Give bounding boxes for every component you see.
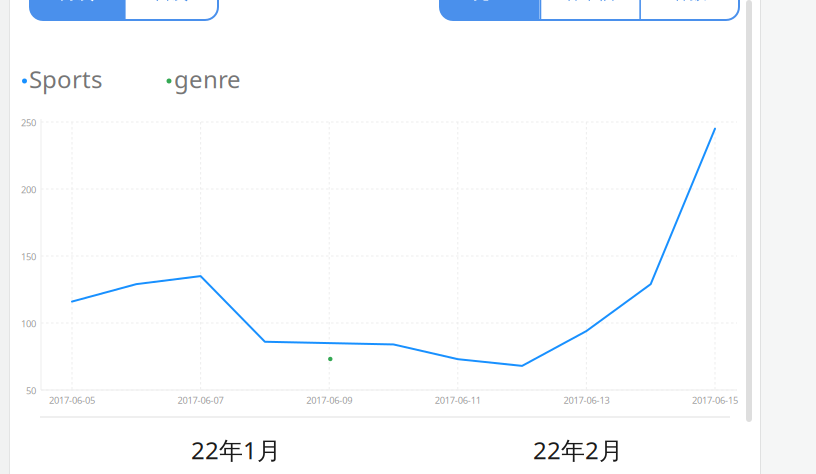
button[interactable]: 売上 [440, 0, 540, 20]
staticText: 客数 [672, 0, 706, 4]
staticText: 日次 [154, 0, 188, 4]
staticText: 2017-06-07 [178, 394, 224, 406]
staticText: 客単価 [564, 0, 615, 4]
staticText: 250 [21, 116, 36, 129]
staticText: 2017-06-13 [563, 394, 609, 406]
staticText: 2017-06-05 [49, 394, 95, 406]
staticText: 2017-06-11 [435, 394, 481, 406]
staticText: 22年2月 [533, 434, 623, 466]
button[interactable]: 客単価 [540, 0, 639, 20]
staticText: 22年1月 [191, 434, 281, 466]
staticText: 100 [21, 317, 36, 330]
staticText: 200 [21, 183, 36, 196]
staticText: 売上 [473, 0, 507, 4]
staticText: 月次 [60, 0, 94, 4]
staticText: 50 [26, 384, 36, 397]
staticText: 150 [21, 250, 36, 263]
button[interactable]: 客数 [639, 0, 739, 20]
staticText: genre [174, 63, 241, 95]
button[interactable]: 月次 [30, 0, 124, 20]
staticText: 2017-06-15 [692, 394, 738, 406]
staticText: 2017-06-09 [306, 394, 352, 406]
button[interactable]: 日次 [124, 0, 218, 20]
staticText: Sports [29, 63, 102, 95]
